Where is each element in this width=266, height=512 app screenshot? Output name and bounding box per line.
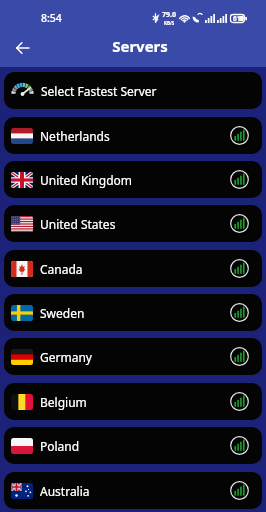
- staticText: Australia: [40, 483, 90, 499]
- staticText: 61: [233, 14, 241, 23]
- staticText: Germany: [40, 349, 92, 365]
- button[interactable]: Sweden: [4, 294, 262, 331]
- button[interactable]: Select Fastest Server: [4, 72, 262, 109]
- staticText: 79.0: [162, 10, 176, 20]
- button[interactable]: Back: [8, 34, 36, 62]
- button[interactable]: Canada: [4, 250, 262, 287]
- button[interactable]: Germany: [4, 338, 262, 375]
- button[interactable]: United States: [4, 205, 262, 242]
- button[interactable]: Poland: [4, 427, 262, 464]
- staticText: KB/S: [164, 20, 175, 26]
- staticText: Servers: [40, 36, 240, 56]
- button[interactable]: United Kingdom: [4, 161, 262, 198]
- staticText: Netherlands: [40, 128, 110, 144]
- button[interactable]: Belgium: [4, 383, 262, 420]
- staticText: Belgium: [40, 394, 87, 410]
- staticText: United Kingdom: [40, 172, 133, 188]
- staticText: Sweden: [40, 305, 85, 321]
- staticText: Canada: [40, 261, 83, 277]
- staticText: United States: [40, 216, 116, 232]
- staticText: Select Fastest Server: [41, 83, 157, 99]
- button[interactable]: Australia: [4, 472, 262, 509]
- staticText: Poland: [40, 438, 80, 454]
- button[interactable]: Netherlands: [4, 117, 262, 154]
- staticText: 8:54: [41, 11, 62, 25]
